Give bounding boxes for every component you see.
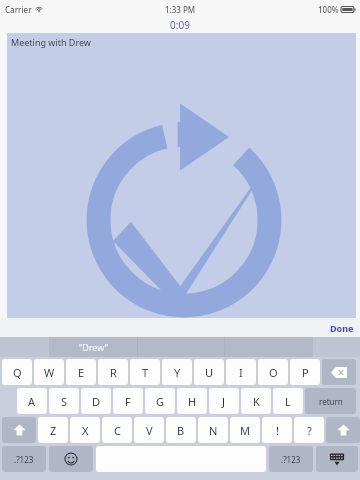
staticText: D <box>92 394 101 409</box>
button[interactable]: K <box>241 388 271 414</box>
staticText: C <box>114 423 121 438</box>
staticText: H <box>188 394 197 409</box>
button[interactable]: ? <box>294 417 324 443</box>
staticText: E <box>78 365 85 380</box>
staticText: ? <box>307 423 312 438</box>
staticText: M <box>240 423 250 438</box>
staticText: 0:09 <box>170 18 190 31</box>
button[interactable]: Hide keyboard <box>316 446 358 472</box>
staticText: G <box>156 394 165 409</box>
button[interactable]: C <box>102 417 132 443</box>
button[interactable]: H <box>177 388 207 414</box>
button[interactable]: W <box>34 359 64 385</box>
staticText: 100% <box>318 4 339 15</box>
staticText: T <box>142 365 149 380</box>
button[interactable]: G <box>145 388 175 414</box>
staticText: 1:33 PM <box>165 4 196 15</box>
button[interactable]: Z <box>38 417 68 443</box>
staticText: F <box>125 394 131 409</box>
button[interactable]: L <box>273 388 303 414</box>
staticText: Q <box>13 365 22 380</box>
button[interactable]: Done <box>324 320 360 336</box>
button[interactable]: Meeting with Drew <box>7 33 356 318</box>
button[interactable]: Shift <box>326 417 360 443</box>
button[interactable]: N <box>198 417 228 443</box>
button[interactable]: return <box>305 388 356 414</box>
staticText: Y <box>174 365 181 380</box>
button[interactable]: X <box>70 417 100 443</box>
button[interactable]: ! <box>262 417 292 443</box>
button[interactable]: V <box>134 417 164 443</box>
button[interactable]: Y <box>162 359 192 385</box>
button[interactable]: A <box>17 388 47 414</box>
staticText: I <box>239 365 243 380</box>
staticText: J <box>222 394 226 409</box>
staticText: V <box>146 423 153 438</box>
staticText: L <box>285 394 291 409</box>
button[interactable]: O <box>258 359 288 385</box>
staticText: O <box>269 365 278 380</box>
button[interactable]: Q <box>2 359 32 385</box>
staticText: ! <box>276 423 279 438</box>
button[interactable]: F <box>113 388 143 414</box>
button[interactable]: .?123 <box>269 446 313 472</box>
staticText: N <box>209 423 218 438</box>
staticText: Carrier <box>5 4 32 15</box>
button[interactable]: B <box>166 417 196 443</box>
button[interactable]: I <box>226 359 256 385</box>
button[interactable]: J <box>209 388 239 414</box>
button[interactable]: T <box>130 359 160 385</box>
staticText: Meeting with Drew <box>11 36 91 48</box>
button[interactable]: Shift <box>2 417 36 443</box>
staticText: Z <box>50 423 57 438</box>
staticText: R <box>110 365 117 380</box>
staticText: P <box>302 365 309 380</box>
button[interactable]: U <box>194 359 224 385</box>
staticText: K <box>253 394 260 409</box>
staticText: return <box>319 396 343 407</box>
staticText: W <box>44 365 55 380</box>
button[interactable]: M <box>230 417 260 443</box>
button[interactable]: S <box>49 388 79 414</box>
staticText: X <box>82 423 89 438</box>
button[interactable]: .?123 <box>2 446 46 472</box>
button[interactable]: E <box>66 359 96 385</box>
button[interactable]: R <box>98 359 128 385</box>
button[interactable]: Backspace <box>322 359 356 385</box>
staticText: U <box>205 365 214 380</box>
button[interactable]: P <box>290 359 320 385</box>
staticText: Done <box>330 322 354 334</box>
button[interactable]: D <box>81 388 111 414</box>
button[interactable]: Emoji <box>49 446 93 472</box>
staticText: A <box>28 394 36 409</box>
staticText: “Drew” <box>79 341 108 353</box>
staticText: .?123 <box>14 454 34 465</box>
button[interactable]: “Drew” <box>49 337 137 357</box>
staticText: B <box>177 423 185 438</box>
staticText: S <box>61 394 68 409</box>
staticText: .?123 <box>281 454 301 465</box>
